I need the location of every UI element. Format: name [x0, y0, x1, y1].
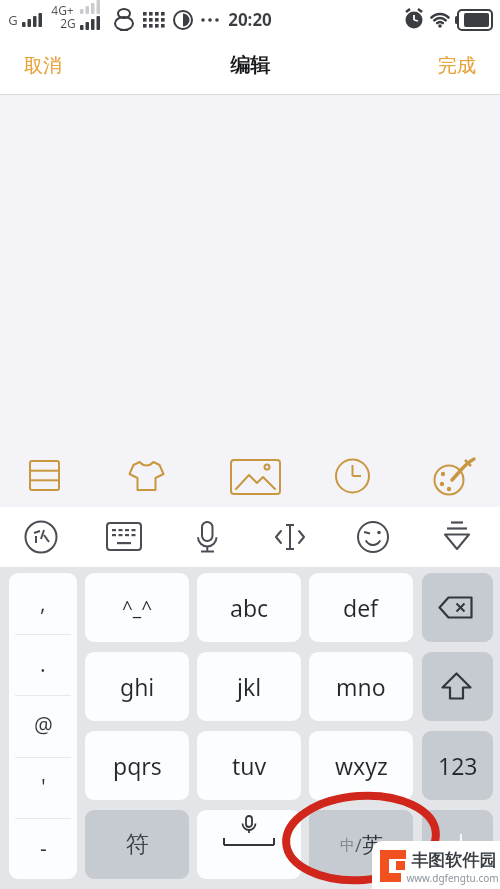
button[interactable]: [328, 452, 378, 500]
button[interactable]: 完成: [428, 50, 486, 82]
staticText: /: [355, 833, 362, 858]
button[interactable]: ,: [9, 573, 77, 634]
staticText: ^_^: [122, 595, 153, 621]
staticText: 英: [362, 832, 383, 858]
button[interactable]: @: [9, 695, 77, 756]
button[interactable]: [100, 513, 148, 561]
staticText: .: [40, 650, 46, 679]
staticText: pqrs: [113, 750, 162, 781]
button[interactable]: def: [309, 573, 413, 642]
staticText: 中: [340, 836, 355, 855]
staticText: 取消: [24, 54, 62, 78]
staticText: 4G+: [51, 2, 74, 18]
staticText: @: [34, 711, 53, 740]
staticText: mno: [336, 671, 386, 702]
staticText: 2G: [60, 15, 76, 31]
button[interactable]: [433, 513, 481, 561]
button[interactable]: [197, 810, 301, 879]
button[interactable]: [267, 513, 315, 561]
button[interactable]: tuv: [197, 731, 301, 800]
button[interactable]: jkl: [197, 652, 301, 721]
button[interactable]: 取消: [14, 50, 72, 82]
button[interactable]: [350, 513, 398, 561]
button[interactable]: pqrs: [85, 731, 189, 800]
button[interactable]: 123: [422, 731, 493, 800]
button[interactable]: [225, 452, 275, 500]
button[interactable]: [183, 513, 231, 561]
button[interactable]: ^_^: [85, 573, 189, 642]
staticText: def: [343, 592, 379, 623]
button[interactable]: [422, 810, 493, 879]
staticText: www.dgfengtu.com: [406, 871, 499, 885]
staticText: tuv: [232, 750, 267, 781]
button[interactable]: [123, 452, 173, 500]
staticText: jkl: [237, 671, 262, 702]
button[interactable]: ': [9, 757, 77, 818]
staticText: ,: [40, 589, 46, 618]
staticText: 123: [438, 750, 478, 781]
button[interactable]: [430, 452, 480, 500]
staticText: 符: [126, 830, 149, 859]
staticText: 完成: [438, 54, 476, 78]
button[interactable]: abc: [197, 573, 301, 642]
button[interactable]: [17, 513, 65, 561]
button[interactable]: ghi: [85, 652, 189, 721]
button[interactable]: [422, 652, 493, 721]
button[interactable]: -: [9, 818, 77, 879]
staticText: ghi: [120, 671, 155, 702]
button[interactable]: [20, 452, 70, 500]
staticText: wxyz: [335, 750, 388, 781]
button[interactable]: 中: [309, 810, 413, 879]
staticText: 编辑: [230, 53, 270, 78]
staticText: 丰图软件园: [411, 850, 496, 871]
button[interactable]: mno: [309, 652, 413, 721]
button[interactable]: 符: [85, 810, 189, 879]
staticText: abc: [230, 592, 269, 623]
staticText: ': [41, 773, 46, 802]
button[interactable]: [422, 573, 493, 642]
staticText: G: [8, 11, 18, 29]
staticText: 20:20: [228, 8, 272, 31]
button[interactable]: wxyz: [309, 731, 413, 800]
button[interactable]: .: [9, 634, 77, 695]
staticText: -: [40, 834, 47, 863]
